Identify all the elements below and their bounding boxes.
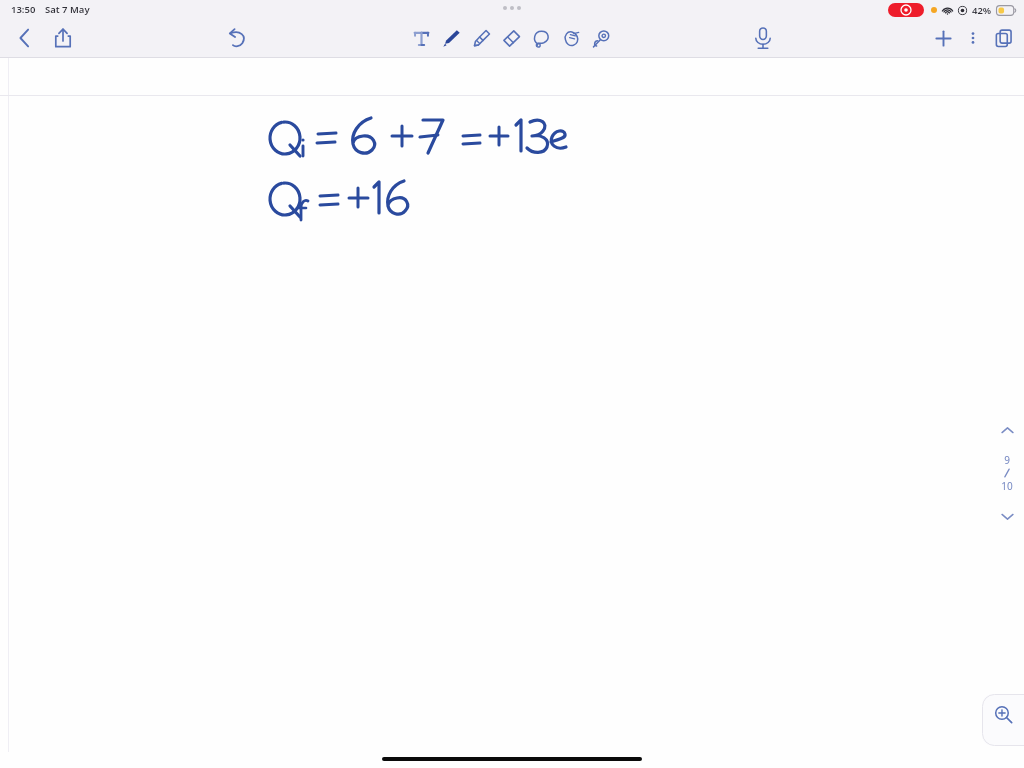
button[interactable]: Back [6, 19, 44, 57]
button[interactable]: Share [44, 19, 82, 57]
button[interactable]: Hand tool [556, 23, 586, 53]
button[interactable]: Highlighter tool [466, 23, 496, 53]
staticText: 13:50 [11, 3, 36, 16]
button[interactable]: More options [960, 25, 986, 51]
button[interactable]: Previous page [994, 417, 1020, 443]
button[interactable]: Next page [994, 503, 1020, 529]
button[interactable]: Page 9 of 10 [1001, 453, 1013, 493]
button[interactable]: Lasso tool [526, 23, 556, 53]
staticText: 10 [1001, 479, 1013, 493]
button[interactable]: Zoom in [982, 694, 1024, 746]
staticText: Sat 7 May [45, 3, 90, 16]
button[interactable]: Add [926, 21, 960, 55]
button[interactable]: Undo [218, 19, 256, 57]
button[interactable]: Record audio [744, 19, 782, 57]
button[interactable]: Shape tool [586, 23, 616, 53]
button[interactable]: Pages [986, 21, 1020, 55]
button[interactable]: Text tool [406, 23, 436, 53]
staticText: 9 [1004, 453, 1010, 467]
button[interactable]: Eraser tool [496, 23, 526, 53]
button[interactable]: Pen tool [436, 23, 466, 53]
staticText: 42% [972, 4, 992, 17]
